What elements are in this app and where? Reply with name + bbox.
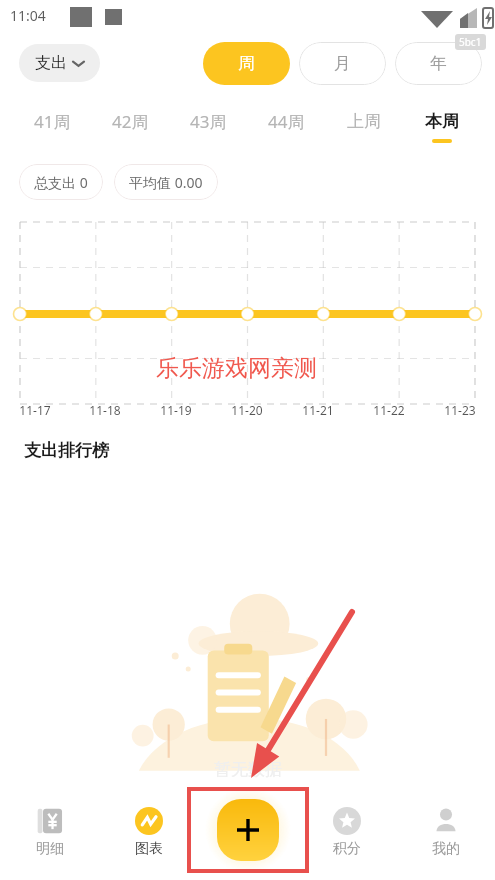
button[interactable]: 42周: [91, 96, 169, 158]
button[interactable]: 本周: [403, 96, 481, 158]
button[interactable]: 上周: [325, 96, 403, 158]
button[interactable]: 41周: [14, 96, 91, 158]
staticText: 11-18: [89, 402, 121, 418]
button[interactable]: 月: [299, 42, 386, 85]
staticText: 11-20: [231, 402, 263, 418]
button[interactable]: 明细: [0, 784, 99, 880]
staticText: 周: [238, 53, 255, 74]
button[interactable]: 43周: [169, 96, 247, 158]
staticText: 月: [334, 53, 351, 74]
staticText: 11-19: [160, 402, 192, 418]
staticText: 乐乐游戏网亲测: [156, 354, 317, 383]
staticText: 43周: [190, 110, 227, 133]
button[interactable]: 平均值 0.00: [114, 164, 218, 200]
staticText: 44周: [268, 110, 305, 133]
button[interactable]: 年: [395, 42, 482, 85]
staticText: 我的: [432, 840, 460, 858]
button[interactable]: 44周: [247, 96, 325, 158]
staticText: 11-23: [444, 402, 476, 418]
staticText: 平均值 0.00: [129, 173, 203, 192]
button[interactable]: Add record: [217, 799, 279, 861]
button[interactable]: 图表: [99, 784, 198, 880]
button[interactable]: 总支出 0: [19, 164, 103, 200]
staticText: 本周: [425, 111, 459, 132]
button[interactable]: 积分: [297, 784, 396, 880]
staticText: 支出排行榜: [24, 440, 109, 461]
staticText: 图表: [135, 840, 163, 858]
staticText: 11-17: [19, 402, 51, 418]
staticText: 积分: [333, 840, 361, 858]
staticText: 11:04: [10, 6, 46, 25]
staticText: 明细: [36, 840, 64, 858]
staticText: 41周: [34, 110, 71, 133]
button[interactable]: 我的: [396, 784, 495, 880]
staticText: 11-22: [373, 402, 405, 418]
staticText: 总支出 0: [34, 173, 88, 192]
staticText: 暂无数据: [214, 759, 282, 780]
staticText: 支出: [35, 53, 67, 73]
button[interactable]: 周: [203, 42, 290, 85]
staticText: 上周: [347, 111, 381, 132]
staticText: 年: [430, 53, 447, 74]
button[interactable]: 支出: [19, 44, 100, 82]
staticText: 11-21: [302, 402, 334, 418]
staticText: 5bc1: [459, 35, 482, 49]
staticText: 42周: [112, 110, 149, 133]
